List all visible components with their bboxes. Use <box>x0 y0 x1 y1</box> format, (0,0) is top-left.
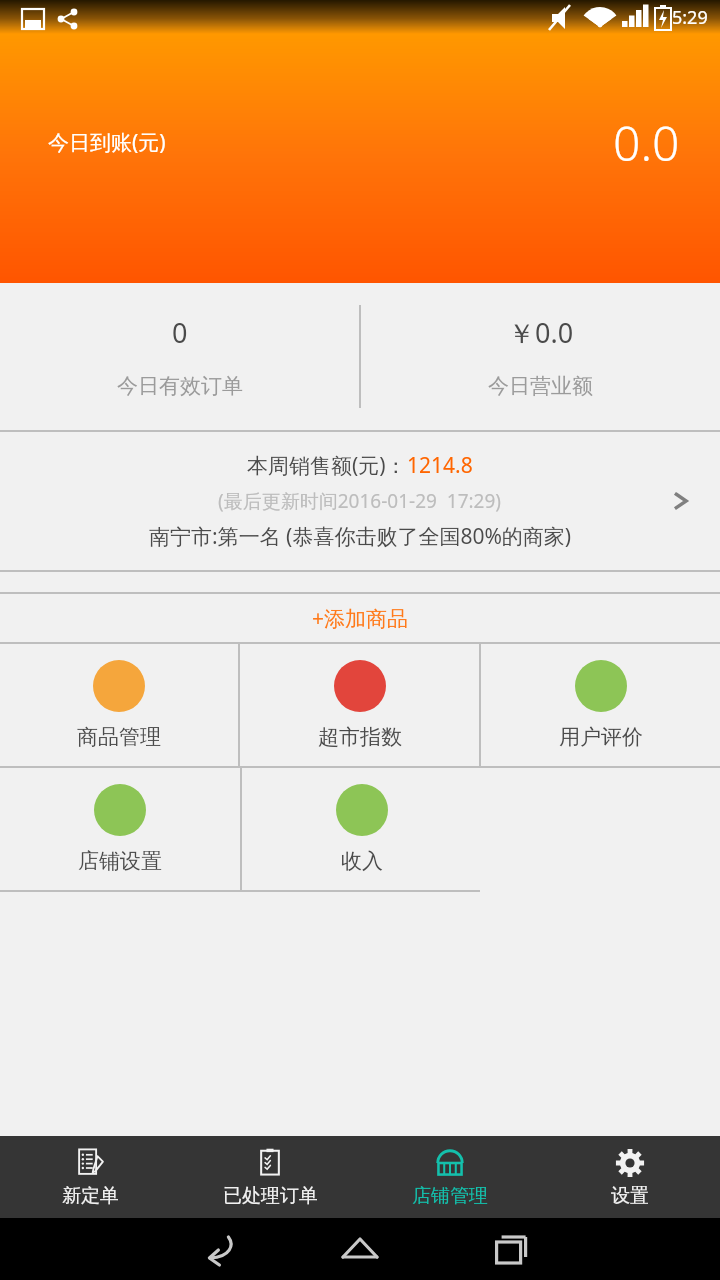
staticText: 今日有效订单 <box>117 373 243 399</box>
staticText: (最后更新时间2016-01-29 17:29) <box>218 488 502 514</box>
button[interactable]: 收入 <box>242 768 481 890</box>
button[interactable]: 商品管理 <box>0 644 238 766</box>
staticText: 收入 <box>341 848 383 874</box>
staticText: 今日到账(元) <box>48 128 166 157</box>
staticText: 店铺管理 <box>412 1184 488 1208</box>
staticText: 0 <box>172 314 188 351</box>
staticText: 店铺设置 <box>78 848 162 874</box>
staticText: 商品管理 <box>77 724 161 750</box>
button[interactable]: 已处理订单 <box>180 1136 360 1218</box>
staticText: 已处理订单 <box>223 1184 318 1208</box>
button[interactable]: 本周销售额(元)： <box>0 432 720 570</box>
button[interactable]: 店铺管理 <box>360 1136 540 1218</box>
staticText: 新定单 <box>62 1184 119 1208</box>
staticText: 用户评价 <box>559 724 643 750</box>
staticText: +添加商品 <box>312 604 409 633</box>
button[interactable]: 用户评价 <box>481 644 720 766</box>
staticText: 超市指数 <box>318 724 402 750</box>
staticText: 今日营业额 <box>488 373 593 399</box>
staticText: 5:29 <box>672 5 708 30</box>
button[interactable]: 店铺设置 <box>0 768 240 890</box>
button[interactable]: 新定单 <box>0 1136 180 1218</box>
staticText: 0.0 <box>613 110 680 175</box>
staticText: 1214.8 <box>407 451 473 480</box>
staticText: 南宁市:第一名 (恭喜你击败了全国80%的商家) <box>149 522 572 551</box>
button[interactable]: ￥0.0 <box>361 283 720 430</box>
button[interactable]: 0 <box>0 283 359 430</box>
button[interactable]: 设置 <box>540 1136 720 1218</box>
staticText: 本周销售额(元)： <box>247 451 407 480</box>
button[interactable]: 超市指数 <box>240 644 479 766</box>
staticText: ￥0.0 <box>508 314 574 351</box>
staticText: 设置 <box>611 1184 649 1208</box>
button[interactable]: +添加商品 <box>0 594 720 642</box>
